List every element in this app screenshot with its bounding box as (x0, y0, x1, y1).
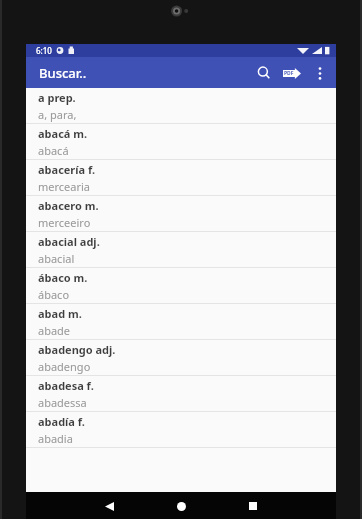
button[interactable]: Export to PDF (278, 59, 306, 87)
button[interactable]: Search (250, 59, 278, 87)
staticText: abacial (38, 251, 75, 266)
button[interactable]: ábaco m. (26, 268, 336, 303)
button[interactable]: abacero m. (26, 196, 336, 231)
staticText: abacial adj. (38, 234, 100, 249)
button[interactable]: Recent apps (240, 493, 266, 519)
staticText: abadia (38, 431, 73, 446)
staticText: abadengo adj. (38, 342, 116, 357)
button[interactable]: Home (168, 493, 194, 519)
staticText: abacá (38, 143, 69, 158)
button[interactable]: abadesa f. (26, 376, 336, 411)
staticText: a prep. (38, 90, 76, 105)
button[interactable]: abadía f. (26, 412, 336, 447)
staticText: abadía f. (38, 414, 85, 429)
staticText: abadesa f. (38, 378, 94, 393)
staticText: abade (38, 323, 71, 338)
button[interactable]: abacá m. (26, 124, 336, 159)
staticText: abacería f. (38, 162, 96, 177)
button[interactable]: More options (306, 59, 334, 87)
button[interactable]: abacial adj. (26, 232, 336, 267)
staticText: Buscar.. (39, 64, 87, 82)
staticText: PDF (284, 70, 294, 77)
staticText: abacá m. (38, 126, 88, 141)
button[interactable]: abacería f. (26, 160, 336, 195)
button[interactable]: abadengo adj. (26, 340, 336, 375)
button[interactable]: Back (96, 493, 122, 519)
staticText: mercearia (38, 179, 91, 194)
staticText: ábaco (38, 287, 70, 302)
staticText: ábaco m. (38, 270, 88, 285)
button[interactable]: a prep. (26, 88, 336, 123)
staticText: a, para, (38, 107, 77, 122)
staticText: merceeiro (38, 215, 91, 230)
staticText: abad m. (38, 306, 82, 321)
staticText: abadessa (38, 395, 87, 410)
staticText: abadengo (38, 359, 91, 374)
button[interactable]: abad m. (26, 304, 336, 339)
staticText: abacero m. (38, 198, 99, 213)
staticText: 6:10 (36, 45, 52, 56)
